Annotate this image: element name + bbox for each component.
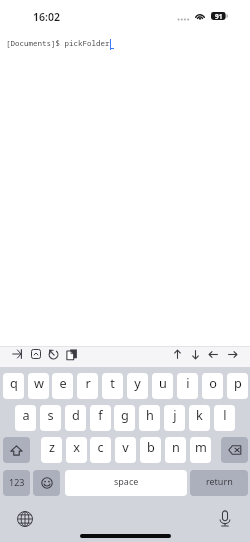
button[interactable]: 123 bbox=[3, 470, 30, 496]
button[interactable]: o bbox=[202, 373, 223, 399]
staticText: r bbox=[85, 374, 91, 391]
button[interactable]: a bbox=[15, 405, 36, 431]
button[interactable]: p bbox=[227, 373, 248, 399]
button[interactable]: Emoji bbox=[33, 470, 60, 496]
button[interactable]: t bbox=[102, 373, 123, 399]
staticText: z bbox=[49, 438, 55, 455]
button[interactable]: Paste bbox=[62, 345, 80, 363]
button[interactable]: Expand bbox=[27, 345, 45, 363]
staticText: w bbox=[34, 374, 44, 391]
button[interactable]: Left bbox=[204, 345, 222, 363]
button[interactable]: q bbox=[3, 373, 24, 399]
button[interactable]: j bbox=[164, 405, 185, 431]
button[interactable]: r bbox=[77, 373, 98, 399]
staticText: k bbox=[196, 406, 203, 423]
button[interactable]: e bbox=[52, 373, 73, 399]
staticText: [Documents]$ pickFolder bbox=[6, 38, 110, 48]
staticText: j bbox=[173, 406, 177, 423]
button[interactable]: Tab bbox=[8, 345, 26, 363]
staticText: 123 bbox=[9, 476, 25, 488]
button[interactable]: Right bbox=[223, 345, 241, 363]
staticText: f bbox=[98, 406, 103, 423]
button[interactable]: v bbox=[115, 437, 136, 463]
staticText: q bbox=[10, 374, 18, 391]
staticText: t bbox=[110, 374, 115, 391]
button[interactable]: z bbox=[41, 437, 62, 463]
staticText: y bbox=[134, 374, 141, 391]
button[interactable]: l bbox=[214, 405, 235, 431]
button[interactable]: Down bbox=[186, 345, 204, 363]
button[interactable]: Delete bbox=[221, 437, 248, 463]
staticText: g bbox=[121, 406, 129, 423]
button[interactable]: space bbox=[65, 470, 187, 496]
staticText: o bbox=[209, 374, 217, 391]
staticText: u bbox=[159, 374, 167, 391]
button[interactable]: c bbox=[90, 437, 111, 463]
button[interactable]: return bbox=[190, 470, 248, 496]
staticText: p bbox=[234, 374, 242, 391]
button[interactable]: Change keyboard bbox=[14, 508, 36, 530]
button[interactable]: m bbox=[190, 437, 211, 463]
button[interactable]: h bbox=[139, 405, 160, 431]
staticText: a bbox=[22, 406, 30, 423]
staticText: 16:02 bbox=[33, 10, 60, 24]
button[interactable]: Dictate bbox=[214, 507, 236, 529]
staticText: x bbox=[73, 438, 80, 455]
staticText: s bbox=[47, 406, 54, 423]
staticText: return bbox=[206, 475, 233, 487]
button[interactable]: b bbox=[140, 437, 161, 463]
staticText: n bbox=[172, 438, 180, 455]
staticText: l bbox=[223, 406, 227, 423]
staticText: h bbox=[146, 406, 154, 423]
button[interactable]: f bbox=[90, 405, 111, 431]
button[interactable]: u bbox=[152, 373, 173, 399]
staticText: m bbox=[195, 438, 207, 455]
staticText: d bbox=[72, 406, 80, 423]
button[interactable]: n bbox=[165, 437, 186, 463]
button[interactable]: k bbox=[189, 405, 210, 431]
button[interactable]: d bbox=[65, 405, 86, 431]
button[interactable]: i bbox=[177, 373, 198, 399]
button[interactable]: g bbox=[114, 405, 135, 431]
button[interactable]: w bbox=[28, 373, 49, 399]
button[interactable]: History bbox=[44, 345, 62, 363]
button[interactable]: Shift bbox=[3, 437, 30, 463]
button[interactable]: x bbox=[66, 437, 87, 463]
staticText: 91 bbox=[215, 12, 223, 20]
staticText: b bbox=[147, 438, 155, 455]
staticText: c bbox=[97, 438, 104, 455]
staticText: v bbox=[122, 438, 129, 455]
button[interactable]: y bbox=[127, 373, 148, 399]
button[interactable]: s bbox=[40, 405, 61, 431]
staticText: i bbox=[186, 374, 190, 391]
button[interactable]: Up bbox=[168, 345, 186, 363]
staticText: e bbox=[59, 374, 67, 391]
staticText: space bbox=[114, 475, 139, 487]
